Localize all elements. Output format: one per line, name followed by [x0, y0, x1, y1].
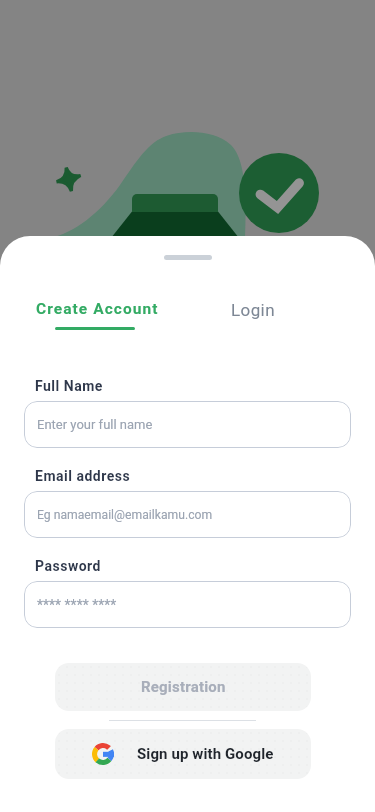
staticText: Sign up with Google [137, 745, 274, 763]
other: Google [92, 743, 114, 765]
button[interactable]: Google [55, 729, 311, 779]
button[interactable]: Eg namaemail@emailkamu.com [24, 491, 351, 538]
staticText: Registration [141, 678, 226, 696]
button[interactable]: **** **** **** [24, 581, 351, 628]
staticText: **** **** **** [37, 597, 117, 613]
staticText: Create Account [36, 300, 159, 318]
staticText: Eg namaemail@emailkamu.com [37, 508, 213, 522]
staticText: Login [231, 300, 275, 320]
staticText: Full Name [35, 378, 103, 394]
staticText: Password [35, 558, 101, 574]
staticText: Email address [35, 468, 131, 484]
staticText: Enter your full name [37, 417, 153, 432]
button[interactable]: Create Account [36, 300, 159, 318]
button[interactable]: Enter your full name [24, 401, 351, 448]
button[interactable]: Login [231, 300, 275, 320]
button[interactable]: Registration [55, 663, 311, 711]
